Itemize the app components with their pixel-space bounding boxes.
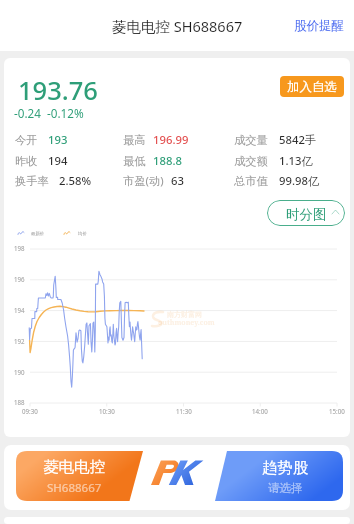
- staticText: 趋势股: [262, 458, 309, 478]
- staticText: 63: [171, 173, 184, 188]
- button[interactable]: 时分图: [267, 200, 345, 226]
- staticText: 14:00: [252, 407, 268, 415]
- staticText: 196.99: [153, 132, 189, 147]
- staticText: 股价提醒: [294, 18, 344, 34]
- staticText: 196: [14, 275, 25, 283]
- staticText: -0.24 -0.12%: [14, 105, 84, 121]
- staticText: 192: [14, 337, 25, 345]
- staticText: 99.98亿: [279, 173, 320, 188]
- staticText: 188: [14, 398, 25, 406]
- staticText: 成交额: [234, 154, 268, 168]
- staticText: 昨收: [15, 154, 38, 168]
- staticText: 198: [14, 244, 25, 252]
- staticText: 10:30: [99, 407, 115, 415]
- staticText: 南方财富网: [167, 310, 202, 319]
- staticText: 今开: [15, 133, 38, 147]
- staticText: 成交量: [234, 133, 268, 147]
- staticText: 换手率: [15, 174, 49, 188]
- staticText: 最高: [123, 133, 146, 147]
- staticText: 请选择: [268, 481, 303, 495]
- staticText: 194: [48, 153, 68, 168]
- staticText: 15:00: [329, 407, 345, 415]
- staticText: 193.76: [18, 73, 98, 108]
- button[interactable]: 趋势股: [215, 451, 343, 501]
- staticText: 5842手: [279, 132, 317, 147]
- staticText: 时分图: [286, 206, 327, 223]
- button[interactable]: 加入自选: [280, 76, 344, 97]
- staticText: 11:30: [176, 407, 192, 415]
- staticText: 194: [14, 306, 25, 314]
- staticText: 总市值: [234, 174, 268, 188]
- staticText: 最低: [123, 154, 146, 168]
- staticText: 1.13亿: [279, 153, 313, 168]
- staticText: 均价: [78, 231, 87, 237]
- staticText: 加入自选: [287, 79, 337, 95]
- staticText: 最新价: [31, 231, 45, 237]
- staticText: 菱电电控: [43, 457, 105, 477]
- staticText: outhmoney.com: [158, 318, 215, 328]
- staticText: 09:30: [22, 407, 38, 415]
- button[interactable]: 股价提醒: [284, 8, 354, 44]
- staticText: 193: [48, 132, 68, 147]
- staticText: 2.58%: [59, 173, 92, 188]
- button[interactable]: 菱电电控: [16, 451, 143, 501]
- staticText: 市盈(动): [123, 173, 164, 188]
- staticText: 188.8: [153, 153, 182, 168]
- staticText: 190: [14, 368, 25, 376]
- staticText: 菱电电控 SH688667: [112, 16, 243, 36]
- staticText: SH688667: [47, 480, 102, 496]
